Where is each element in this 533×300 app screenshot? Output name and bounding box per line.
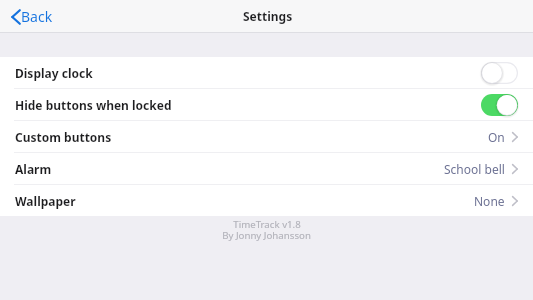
staticText: On [488, 129, 505, 145]
staticText: Settings [243, 8, 293, 24]
button[interactable]: Alarm [0, 153, 533, 185]
staticText: TimeTrack v1.8 [233, 218, 301, 231]
staticText: Custom buttons [15, 129, 112, 145]
button[interactable]: Hide buttons when locked [0, 89, 533, 121]
button[interactable]: Custom buttons [0, 121, 533, 153]
staticText: None [474, 193, 505, 209]
button[interactable]: Switch off [481, 62, 518, 84]
staticText: Back [21, 7, 53, 26]
button[interactable]: Switch on [481, 94, 518, 116]
staticText: Alarm [15, 161, 52, 177]
staticText: Wallpaper [15, 193, 76, 209]
button[interactable]: Display clock [0, 57, 533, 89]
staticText: School bell [444, 161, 505, 177]
button[interactable]: Wallpaper [0, 185, 533, 216]
staticText: By Jonny Johansson [222, 229, 311, 242]
staticText: Display clock [15, 65, 93, 81]
button[interactable]: Back [0, 2, 63, 31]
staticText: Hide buttons when locked [15, 97, 172, 113]
